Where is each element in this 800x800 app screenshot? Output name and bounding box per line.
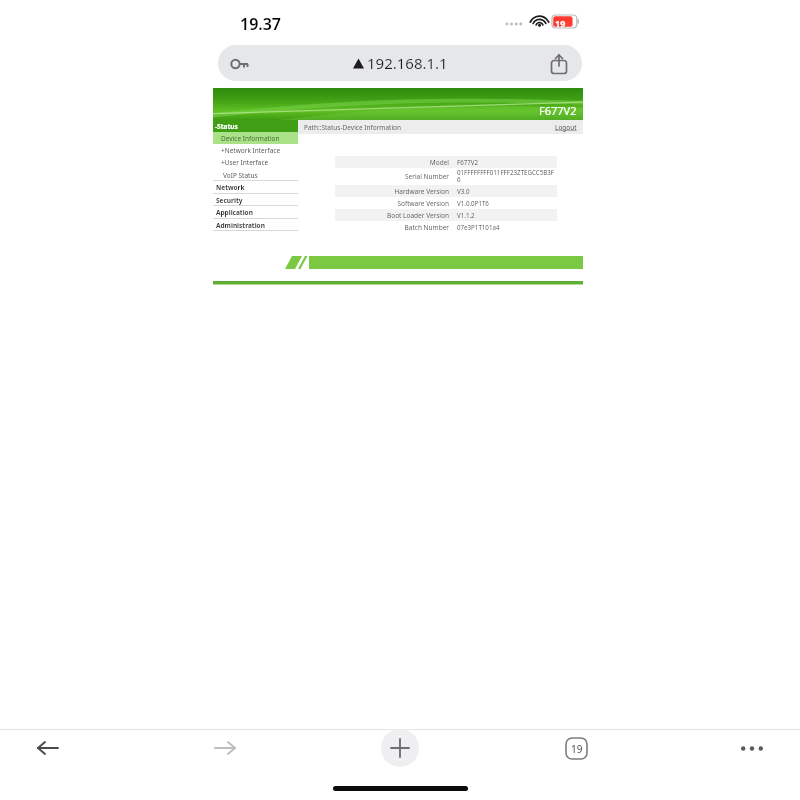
button[interactable]: -Status bbox=[213, 120, 298, 132]
button[interactable]: Tabs bbox=[556, 728, 596, 768]
staticText: 07e3P1T101a4 bbox=[457, 223, 500, 231]
button[interactable]: More bbox=[732, 728, 772, 768]
button[interactable]: Network bbox=[213, 181, 298, 194]
staticText: Device Information bbox=[221, 134, 280, 143]
staticText: Serial Number bbox=[405, 172, 449, 181]
staticText: -Status bbox=[215, 122, 238, 131]
button[interactable]: Device Information bbox=[213, 132, 298, 144]
staticText: Path::Status-Device Information bbox=[304, 123, 402, 132]
button[interactable]: Share bbox=[548, 53, 570, 75]
staticText: F677V2 bbox=[457, 158, 479, 166]
button[interactable]: Back bbox=[28, 728, 68, 768]
staticText: Security bbox=[216, 196, 243, 205]
staticText: Application bbox=[216, 208, 253, 217]
button[interactable]: Forward bbox=[205, 728, 245, 768]
button[interactable]: Secure connection bbox=[218, 45, 582, 81]
staticText: F677V2 bbox=[539, 103, 577, 118]
staticText: Logout bbox=[555, 123, 577, 132]
staticText: Network bbox=[216, 183, 245, 192]
button[interactable]: Administration bbox=[213, 219, 298, 231]
staticText: 19.37 bbox=[240, 13, 282, 35]
staticText: +Network Interface bbox=[221, 146, 281, 155]
button[interactable]: VoIP Status bbox=[213, 169, 298, 181]
staticText: 19 bbox=[571, 742, 583, 756]
staticText: 192.168.1.1 bbox=[367, 53, 448, 73]
staticText: 19 bbox=[555, 17, 566, 29]
button[interactable]: Security bbox=[213, 194, 298, 206]
staticText: V1.1.2 bbox=[457, 211, 475, 219]
staticText: Software Version bbox=[397, 199, 449, 208]
staticText: Boot Loader Version bbox=[386, 211, 449, 220]
staticText: +User Interface bbox=[221, 158, 269, 167]
button[interactable]: +User Interface bbox=[213, 156, 298, 169]
button[interactable]: Secure connection bbox=[230, 53, 252, 75]
staticText: V3.0 bbox=[457, 187, 470, 195]
staticText: VoIP Status bbox=[223, 171, 258, 180]
staticText: 01FFFFFFFF011FFF23ZTEGCC5B3F6 51E bbox=[457, 168, 557, 185]
staticText: V1.0.0P1T6 bbox=[457, 199, 489, 207]
staticText: Model bbox=[429, 158, 449, 167]
button[interactable]: Application bbox=[213, 206, 298, 219]
button[interactable]: Logout bbox=[555, 123, 577, 132]
staticText: Hardware Version bbox=[394, 187, 449, 196]
staticText: Batch Number bbox=[404, 223, 449, 232]
button[interactable]: +Network Interface bbox=[213, 144, 298, 156]
staticText: Administration bbox=[216, 221, 265, 230]
button[interactable]: New tab bbox=[381, 729, 419, 767]
